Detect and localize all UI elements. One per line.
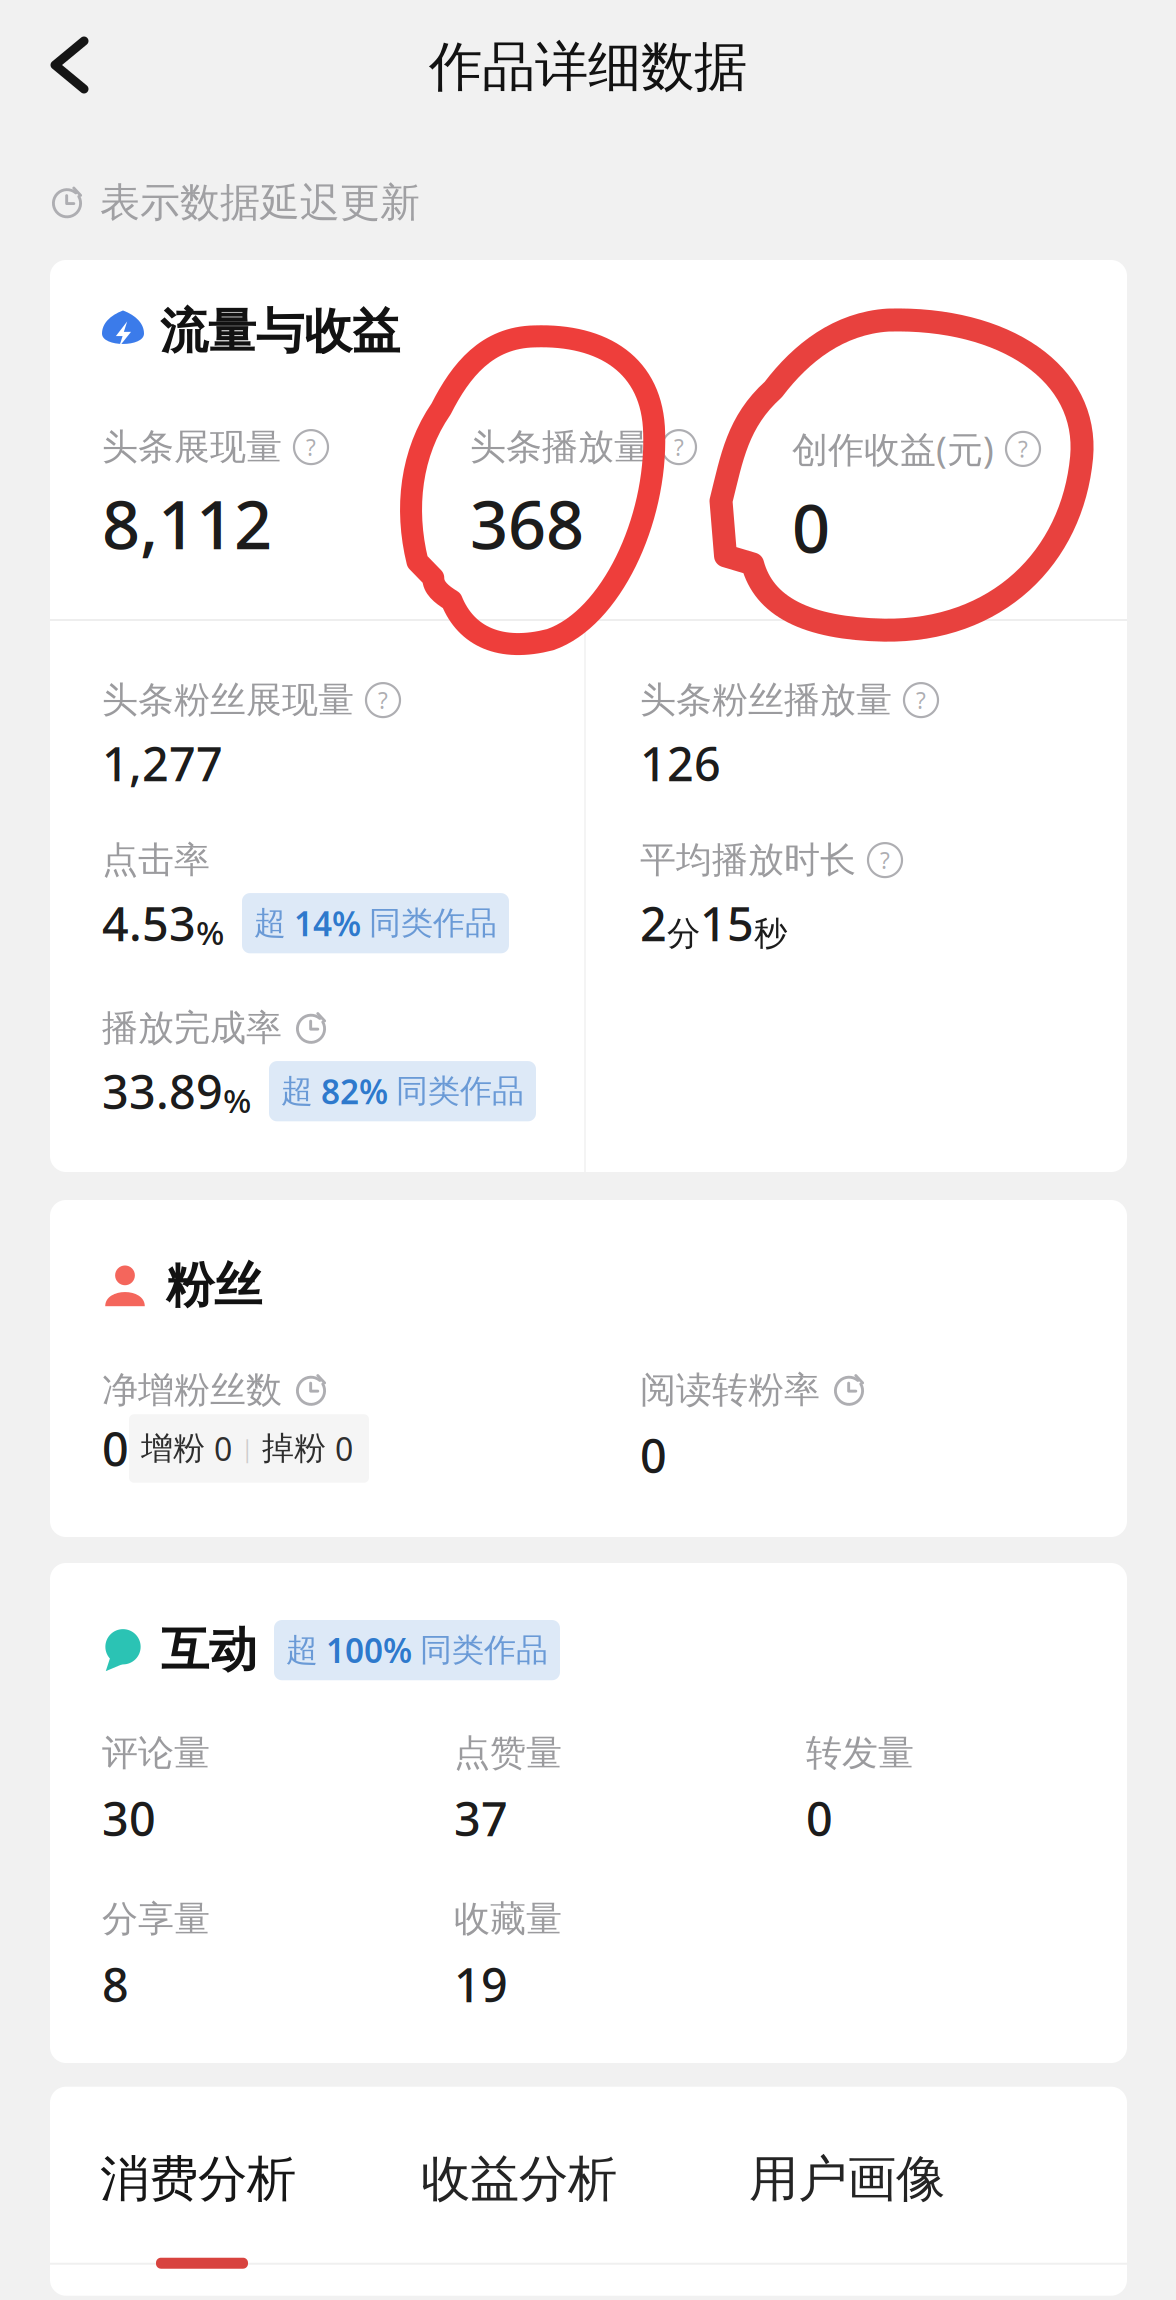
staticText: 82% — [321, 1069, 388, 1113]
staticText: 创作收益(元) — [792, 425, 994, 473]
staticText: 点击率 — [102, 838, 210, 882]
staticText: 同类作品 — [396, 1072, 524, 1111]
staticText: 净增粉丝数 — [102, 1368, 282, 1412]
staticText: 0 — [640, 1424, 667, 1486]
button[interactable]: 用户画像 — [749, 2087, 985, 2300]
staticText: 表示数据延迟更新 — [100, 178, 420, 227]
staticText: 作品详细数据 — [429, 34, 747, 100]
staticText: 8 — [102, 1953, 129, 2015]
staticText: 头条粉丝展现量 — [102, 678, 354, 722]
staticText: 互动 — [161, 1621, 257, 1680]
staticText: 收益分析 — [421, 2149, 617, 2209]
staticText: 流量与收益 — [160, 302, 400, 361]
staticText: ? — [674, 432, 684, 462]
staticText: 用户画像 — [749, 2149, 945, 2209]
staticText: 同类作品 — [369, 904, 497, 943]
staticText: 2 — [640, 892, 667, 954]
staticText: 播放完成率 — [102, 1006, 282, 1050]
staticText: 1,277 — [102, 732, 223, 794]
button[interactable]: 收益分析 — [421, 2087, 657, 2300]
staticText: 超 — [286, 1630, 318, 1670]
staticText: 头条粉丝播放量 — [640, 678, 892, 722]
staticText: 4.53 — [102, 892, 196, 954]
staticText: 33.89 — [102, 1060, 223, 1122]
button[interactable]: Back — [0, 0, 119, 134]
staticText: 15 — [700, 892, 754, 954]
staticText: 头条播放量 — [470, 425, 650, 469]
staticText: | — [241, 1433, 253, 1463]
staticText: 126 — [640, 732, 721, 794]
staticText: 8,112 — [102, 479, 272, 568]
staticText: 100% — [326, 1628, 412, 1672]
staticText: 秒 — [754, 913, 787, 954]
staticText: 阅读转粉率 — [640, 1368, 820, 1412]
staticText: 消费分析 — [100, 2149, 296, 2209]
staticText: % — [223, 1078, 251, 1122]
staticText: 14% — [294, 901, 361, 945]
staticText: 掉粉 — [262, 1429, 326, 1468]
staticText: 平均播放时长 — [640, 838, 856, 882]
button[interactable]: 消费分析 — [50, 2087, 310, 2296]
staticText: 30 — [102, 1787, 156, 1849]
staticText: 头条展现量 — [102, 425, 282, 469]
staticText: 0 — [102, 1417, 129, 1479]
staticText: 粉丝 — [166, 1256, 262, 1315]
staticText: 评论量 — [102, 1731, 210, 1775]
staticText: 0 — [806, 1787, 833, 1849]
staticText: 超 — [281, 1072, 313, 1111]
staticText: 37 — [454, 1787, 508, 1849]
staticText: % — [196, 910, 224, 954]
staticText: ? — [916, 685, 926, 715]
staticText: 点赞量 — [454, 1731, 562, 1775]
staticText: 收藏量 — [454, 1897, 562, 1941]
staticText: 增粉 — [141, 1429, 205, 1468]
staticText: 368 — [470, 479, 584, 568]
staticText: 同类作品 — [420, 1630, 548, 1670]
staticText: 0 — [335, 1427, 353, 1470]
staticText: 转发量 — [806, 1731, 914, 1775]
staticText: ? — [378, 685, 388, 715]
staticText: ? — [880, 845, 890, 875]
staticText: 19 — [454, 1953, 508, 2015]
staticText: ? — [1018, 434, 1028, 464]
staticText: ? — [306, 432, 316, 462]
staticText: 分享量 — [102, 1897, 210, 1941]
staticText: 0 — [792, 483, 830, 571]
staticText: 超 — [254, 904, 286, 943]
staticText: 分 — [667, 913, 700, 954]
staticText: 0 — [214, 1427, 232, 1470]
